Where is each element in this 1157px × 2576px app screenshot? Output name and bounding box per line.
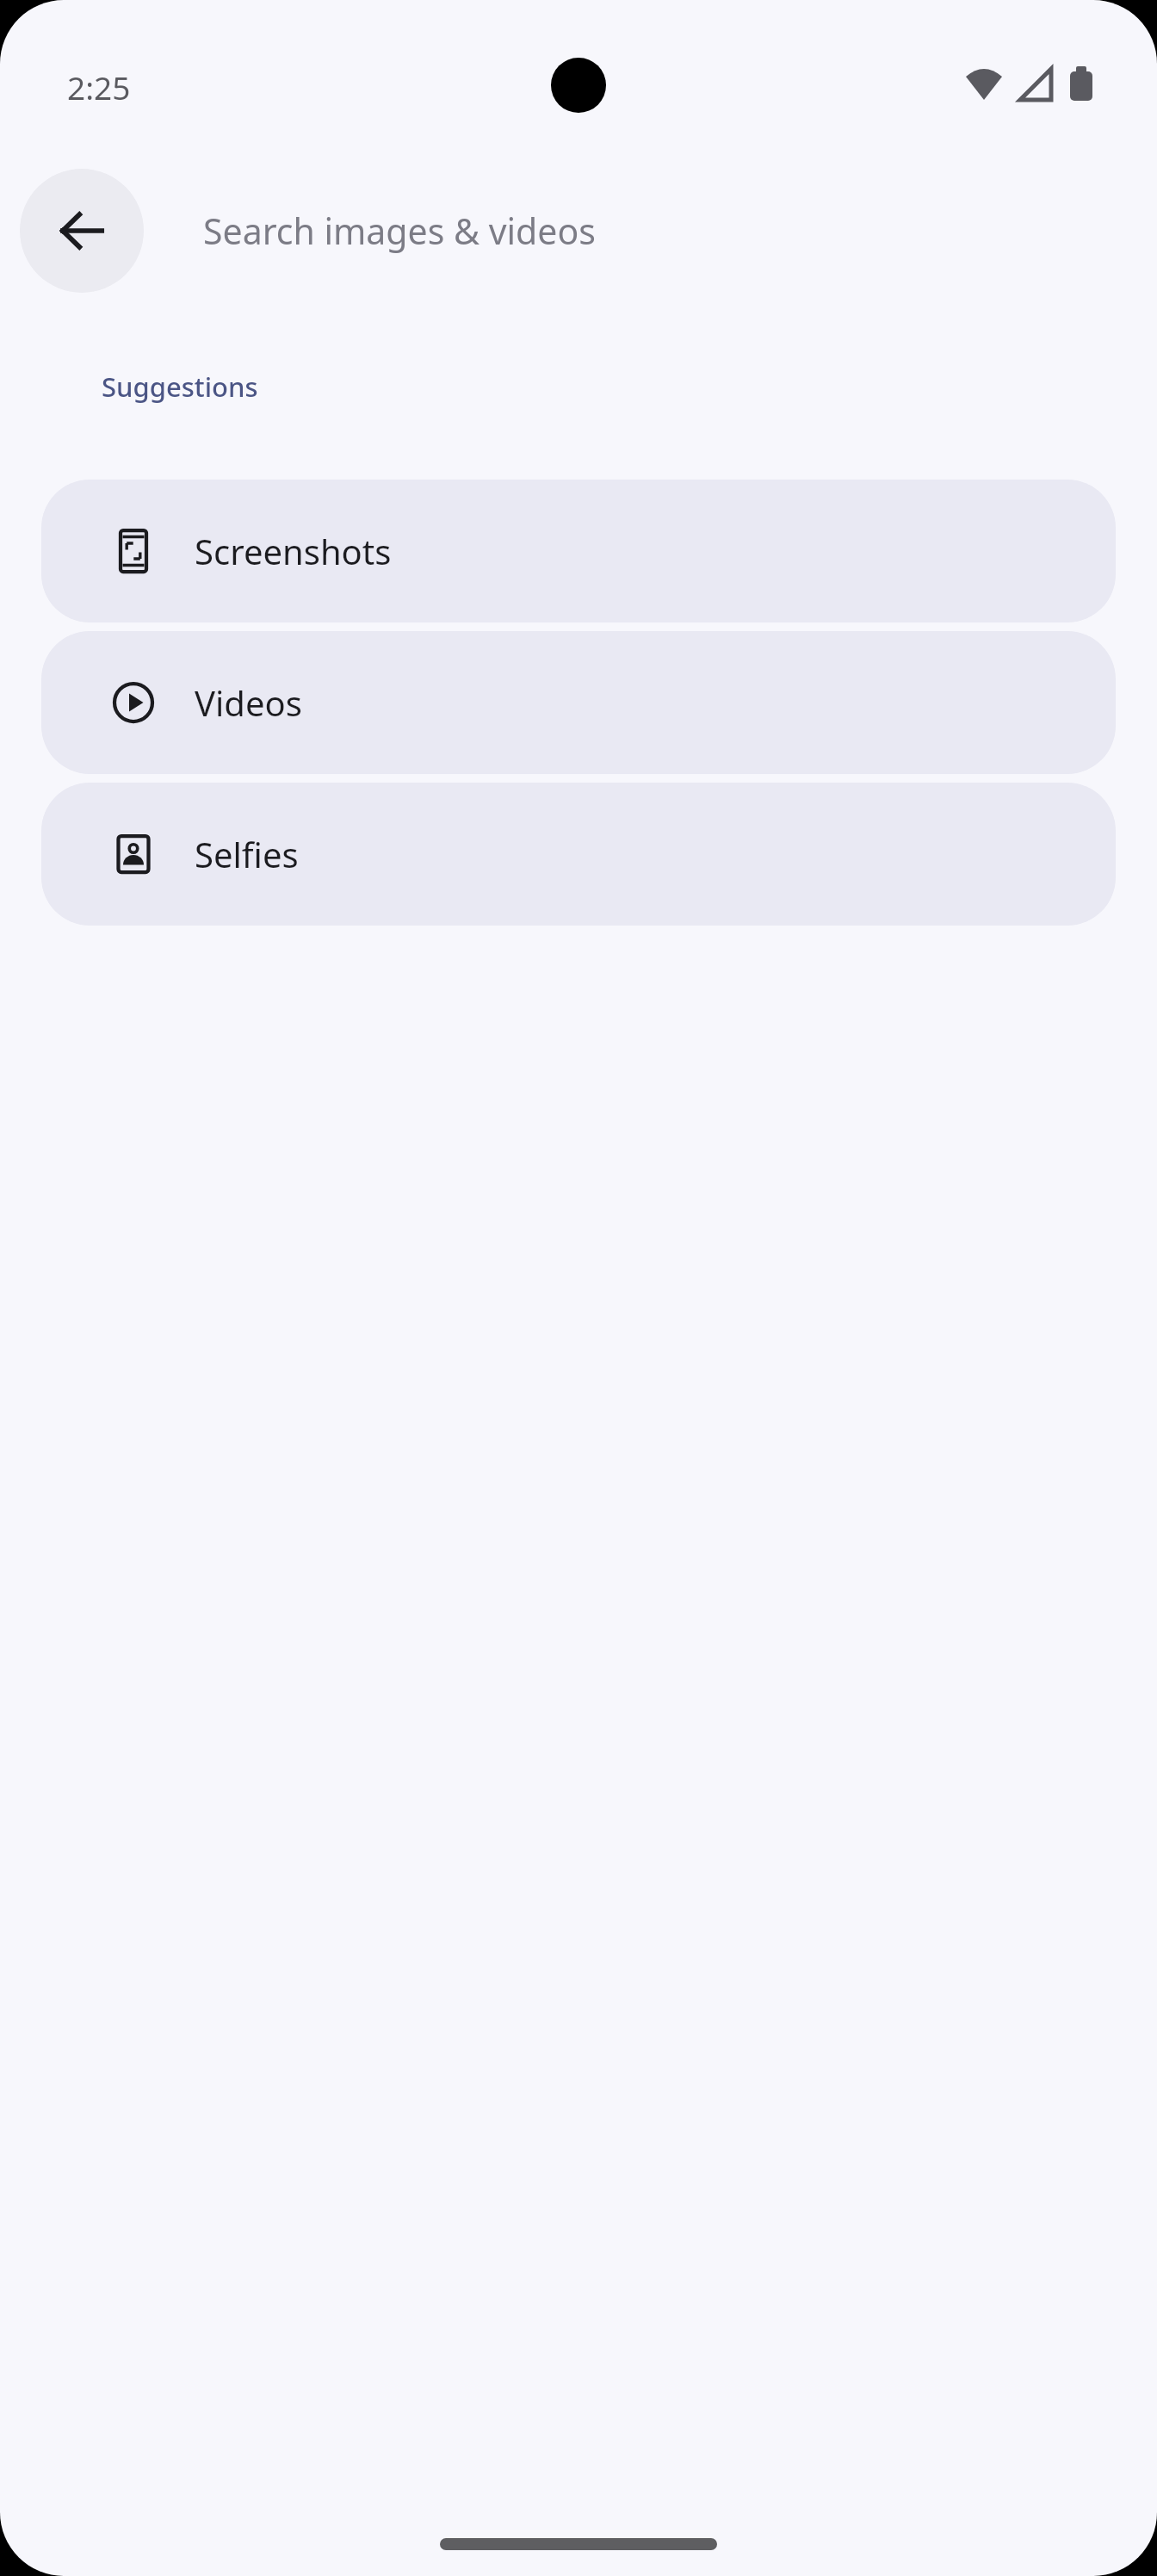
staticText: Screenshots: [195, 528, 392, 574]
button[interactable]: Screenshots: [41, 480, 1116, 622]
button[interactable]: Search images & videos: [203, 168, 1157, 294]
staticText: Selfies: [195, 831, 299, 877]
button[interactable]: Back: [20, 169, 144, 293]
staticText: Search images & videos: [203, 207, 596, 255]
staticText: Suggestions: [102, 368, 258, 405]
button[interactable]: Selfies: [41, 783, 1116, 926]
button[interactable]: Videos: [41, 631, 1116, 774]
staticText: 2:25: [67, 65, 131, 108]
staticText: Videos: [195, 679, 302, 726]
